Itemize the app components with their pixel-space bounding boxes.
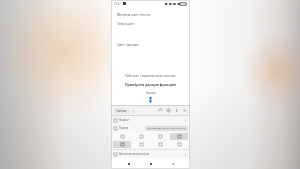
button[interactable]: Format — [166, 108, 171, 113]
staticText: Нажми — [146, 91, 156, 95]
button[interactable]: Undo — [158, 108, 163, 113]
staticText: Такой цвет — [117, 21, 135, 26]
button[interactable]: Главная — [114, 108, 129, 114]
button[interactable]: Format key — [132, 133, 150, 140]
staticText: 10:41 — [114, 2, 121, 6]
button[interactable]: Format key — [113, 141, 131, 148]
button[interactable]: Правка — [111, 124, 190, 132]
button[interactable]: Recents — [124, 159, 133, 168]
button[interactable]: Format key — [132, 141, 150, 148]
button[interactable]: Format key — [170, 133, 188, 140]
button[interactable]: Dropdown — [131, 109, 135, 113]
button[interactable]: Back — [168, 159, 177, 168]
staticText: Формат — [119, 118, 129, 122]
button[interactable]: Format key — [170, 141, 188, 148]
button[interactable]: More — [174, 108, 179, 113]
staticText: Меняем цвет текста — [117, 12, 150, 17]
staticText: Цвет черный — [117, 42, 139, 47]
staticText: Правка — [119, 126, 129, 130]
staticText: Дополнительные опции — [119, 152, 150, 156]
button[interactable]: Format key — [113, 133, 131, 140]
button[interactable]: Format key — [151, 141, 169, 148]
button[interactable]: Формат — [111, 116, 190, 124]
button[interactable]: Home — [146, 159, 155, 168]
staticText: Работает с выделенным текстом — [125, 74, 176, 78]
button[interactable]: Копирование текста стало хорошим — [145, 126, 188, 131]
staticText: Главная — [116, 109, 127, 113]
button[interactable]: Дополнительные опции — [111, 150, 190, 158]
other: Pointer — [147, 96, 154, 103]
button[interactable]: Close — [182, 108, 187, 113]
staticText: Приобрети данную функцию — [125, 82, 176, 87]
button[interactable]: Format key — [151, 133, 169, 140]
staticText: Копирование текста стало хорошим — [147, 127, 186, 130]
